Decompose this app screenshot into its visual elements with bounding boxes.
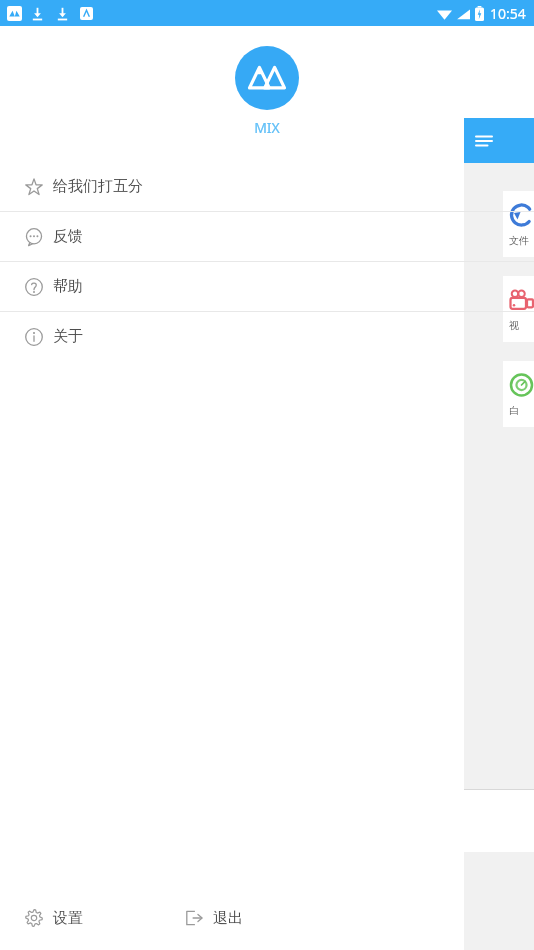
button[interactable]: MIX logo: [235, 46, 299, 110]
button[interactable]: 反馈: [0, 212, 534, 261]
staticText: 视: [509, 319, 519, 332]
staticText: 退出: [213, 909, 243, 928]
button[interactable]: 视: [503, 276, 534, 342]
button[interactable]: Menu: [464, 118, 534, 163]
staticText: 白: [509, 404, 519, 417]
staticText: 帮助: [53, 277, 83, 296]
button[interactable]: 退出: [177, 886, 354, 950]
staticText: 反馈: [53, 227, 83, 246]
button[interactable]: 文件: [503, 191, 534, 257]
staticText: 设置: [53, 909, 83, 928]
button[interactable]: 给我们打五分: [0, 162, 534, 211]
staticText: 文件: [509, 234, 529, 247]
button[interactable]: 白: [503, 361, 534, 427]
staticText: 给我们打五分: [53, 177, 143, 196]
button[interactable]: 设置: [0, 886, 177, 950]
staticText: 10:54: [490, 4, 526, 23]
button[interactable]: 帮助: [0, 262, 534, 311]
staticText: 关于: [53, 327, 83, 346]
button[interactable]: 关于: [0, 312, 534, 361]
staticText: MIX: [254, 118, 280, 137]
